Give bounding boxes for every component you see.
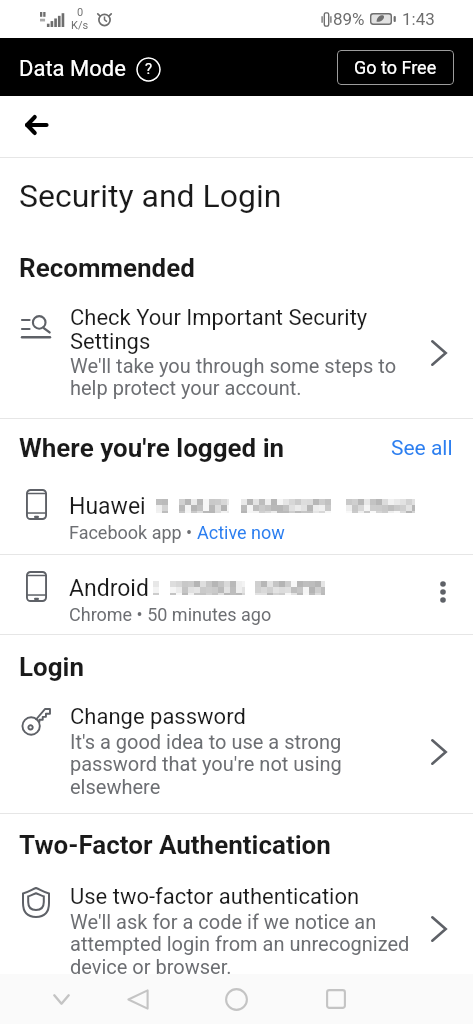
staticText: Android — [69, 575, 149, 602]
staticText: Active now — [197, 522, 285, 543]
button[interactable]: Use two-factor authentication — [0, 860, 473, 974]
button[interactable]: Huawei — [0, 463, 473, 554]
staticText: Data Mode — [19, 56, 126, 82]
staticText: 0 — [77, 6, 84, 19]
button[interactable]: Check Your Important Security Settings — [0, 283, 473, 418]
button[interactable]: Back — [12, 103, 60, 151]
button[interactable]: See all — [391, 436, 473, 461]
staticText: Security and Login — [19, 177, 282, 215]
button[interactable]: More options — [435, 575, 451, 609]
staticText: It's a good idea to use a strong passwor… — [70, 730, 418, 799]
button[interactable]: Android — [0, 555, 473, 634]
staticText: Check Your Important Security Settings — [70, 305, 418, 354]
button[interactable]: Recent apps — [286, 975, 385, 1023]
staticText: Login — [19, 652, 85, 682]
staticText: Go to Free — [354, 57, 437, 78]
staticText: Facebook app • — [69, 522, 197, 543]
staticText: We'll ask for a code if we notice an att… — [70, 910, 418, 974]
button[interactable]: Hide keyboard — [37, 975, 85, 1023]
button[interactable]: Change password — [0, 682, 473, 813]
staticText: See all — [391, 436, 453, 461]
button[interactable]: Home — [187, 975, 286, 1023]
button[interactable]: Back — [88, 975, 187, 1023]
button[interactable]: Go to Free — [337, 50, 454, 85]
staticText: Use two-factor authentication — [70, 884, 360, 910]
staticText: ? — [145, 60, 153, 78]
staticText: Change password — [70, 704, 246, 730]
staticText: K/s — [71, 19, 89, 32]
staticText: 1:43 — [402, 9, 435, 29]
staticText: 89% — [333, 9, 365, 29]
staticText: Where you're logged in — [19, 433, 285, 463]
staticText: Chrome • 50 minutes ago — [69, 604, 272, 625]
staticText: Two-Factor Authentication — [19, 830, 331, 860]
staticText: Recommended — [19, 253, 195, 283]
staticText: We'll take you through some steps to hel… — [70, 354, 418, 400]
staticText: Huawei — [69, 493, 146, 520]
button[interactable]: Help about Data Mode — [136, 57, 161, 82]
